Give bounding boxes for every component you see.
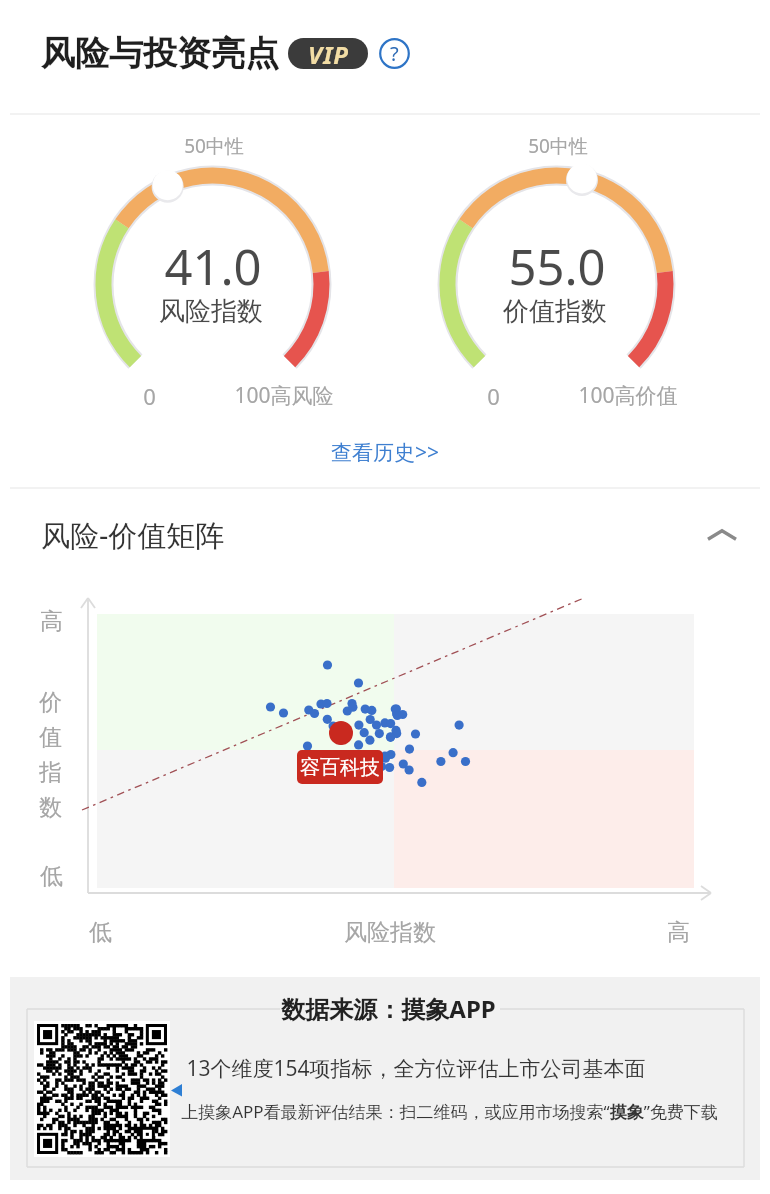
staticText: VIP xyxy=(308,38,349,69)
staticText: 价 xyxy=(39,688,62,717)
staticText: 50中性 xyxy=(528,133,588,159)
staticText: 价值指数 xyxy=(503,295,607,328)
staticText: 风险指数 xyxy=(344,918,436,947)
staticText: 低 xyxy=(89,918,112,947)
staticText: 41.0 xyxy=(164,233,262,293)
staticText: 容百科技 xyxy=(300,755,380,780)
staticText: ? xyxy=(390,40,399,67)
staticText: 上摸象APP看最新评估结果：扫二维码，或应用市场搜索“摸象”免费下载 xyxy=(181,1100,718,1123)
staticText: 高 xyxy=(40,607,63,636)
staticText: 数 xyxy=(39,793,62,822)
button[interactable]: Help xyxy=(379,38,410,69)
staticText: 查看历史>> xyxy=(331,438,440,467)
staticText: 风险-价值矩阵 xyxy=(41,515,225,555)
button[interactable]: 风险-价值矩阵 xyxy=(41,495,737,575)
staticText: 值 xyxy=(39,723,62,752)
staticText: 100高风险 xyxy=(234,381,334,410)
other: Collapse xyxy=(707,520,737,550)
button[interactable]: 查看历史>> xyxy=(317,430,454,475)
staticText: 数据来源：摸象APP xyxy=(281,992,496,1025)
staticText: 风险与投资亮点 xyxy=(41,32,279,75)
staticText: 0 xyxy=(143,381,156,411)
staticText: 0 xyxy=(487,381,500,411)
staticText: 13个维度154项指标，全方位评估上市公司基本面 xyxy=(186,1054,646,1083)
button[interactable]: 风险与投资亮点 xyxy=(41,30,279,76)
staticText: 高 xyxy=(667,918,690,947)
staticText: 风险指数 xyxy=(159,295,263,328)
staticText: 100高价值 xyxy=(578,381,678,410)
button[interactable]: 容百科技 xyxy=(297,750,383,784)
staticText: 低 xyxy=(40,862,63,891)
staticText: 50中性 xyxy=(184,133,244,159)
staticText: 指 xyxy=(39,758,62,787)
staticText: 55.0 xyxy=(508,233,606,293)
button[interactable]: VIP xyxy=(288,38,368,69)
